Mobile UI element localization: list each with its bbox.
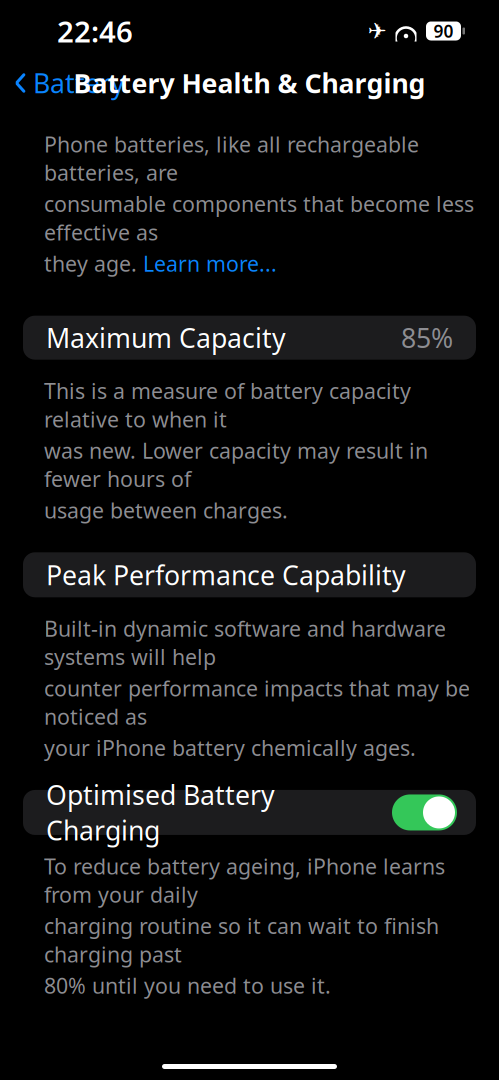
- staticText: consumable components that become less e…: [44, 190, 474, 246]
- staticText: Maximum Capacity: [46, 320, 286, 355]
- staticText: 90: [433, 19, 453, 42]
- staticText: Battery Health & Charging: [73, 65, 425, 101]
- staticText: Peak Performance Capability: [46, 557, 406, 592]
- staticText: Battery: [33, 65, 125, 101]
- staticText: To reduce battery ageing, iPhone learns …: [44, 852, 445, 909]
- staticText: 22:46: [57, 11, 133, 50]
- staticText: ✈: [367, 18, 386, 44]
- staticText: Built-in dynamic software and hardware s…: [44, 614, 446, 671]
- staticText: your iPhone battery chemically ages.: [44, 734, 416, 762]
- staticText: Optimised Battery Charging: [46, 777, 275, 848]
- staticText: Learn more...: [143, 249, 277, 278]
- button[interactable]: Maximum Capacity: [23, 316, 476, 360]
- staticText: usage between charges.: [44, 496, 288, 524]
- staticText: This is a measure of battery capacity re…: [44, 377, 411, 433]
- button[interactable]: Peak Performance Capability: [23, 552, 476, 597]
- staticText: Phone batteries, like all rechargeable b…: [44, 130, 419, 187]
- staticText: was new. Lower capacity may result in fe…: [44, 436, 428, 493]
- button[interactable]: Learn more...: [143, 249, 277, 278]
- staticText: charging routine so it can wait to finis…: [44, 912, 439, 968]
- staticText: they age.: [44, 249, 143, 278]
- button[interactable]: Optimised Battery Charging: [23, 790, 476, 835]
- staticText: 85%: [401, 320, 453, 355]
- button[interactable]: Battery: [0, 59, 125, 107]
- staticText: counter performance impacts that may be …: [44, 674, 470, 731]
- staticText: 80% until you need to use it.: [44, 971, 331, 1000]
